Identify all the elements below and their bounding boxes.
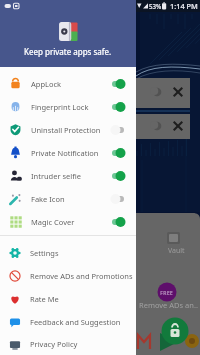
staticText: Private Notification (31, 148, 99, 158)
staticText: Remove ADs and Promotions (30, 271, 133, 281)
staticText: Fake Icon (31, 194, 65, 204)
staticText: Rate Me (30, 294, 59, 304)
staticText: Vault (168, 246, 185, 256)
button[interactable]: Fake Icon (0, 187, 136, 210)
staticText: Magic Cover (31, 217, 75, 227)
staticText: Remove ADs an.. (139, 300, 198, 310)
button[interactable]: Rate Me (0, 287, 136, 310)
staticText: Uninstall Protection (31, 125, 101, 135)
staticText: Intruder selfie (31, 171, 82, 181)
staticText: Feedback and Suggestion (30, 317, 121, 327)
staticText: AppLock (31, 79, 62, 89)
staticText: Keep private apps safe. (24, 46, 112, 57)
staticText: FREE (160, 289, 173, 296)
staticText: Privacy Policy (30, 339, 78, 349)
button[interactable]: Privacy Policy (0, 333, 136, 355)
staticText: Fingerprint Lock (31, 102, 89, 112)
button[interactable]: Magic Cover (0, 210, 136, 233)
button[interactable]: Fingerprint Lock (0, 95, 136, 118)
staticText: Settings (30, 248, 59, 258)
button[interactable]: Settings (0, 241, 136, 264)
button[interactable]: Remove ADs and Promotions (0, 264, 136, 287)
staticText: 53% (149, 2, 162, 10)
button[interactable]: AppLock (0, 72, 136, 95)
staticText: 1:14 PM (170, 1, 198, 11)
button[interactable]: Uninstall Protection (0, 118, 136, 141)
button[interactable]: Intruder selfie (0, 164, 136, 187)
button[interactable]: Feedback and Suggestion (0, 310, 136, 333)
button[interactable]: Private Notification (0, 141, 136, 164)
